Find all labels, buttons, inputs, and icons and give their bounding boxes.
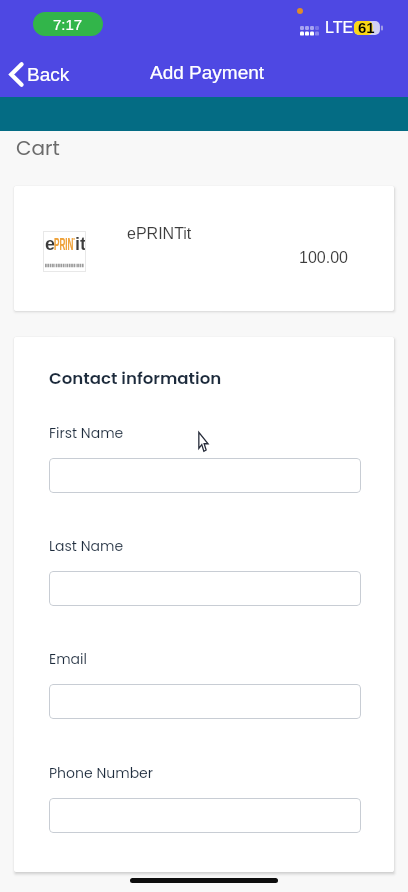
staticText: Cart [16,134,60,162]
button[interactable]: Phone Number [49,798,361,833]
button[interactable]: Email [49,684,361,719]
staticText: First Name [49,423,124,443]
staticText: ePRINTit [127,225,192,243]
staticText: Add Payment [150,62,265,83]
staticText: PRINT [54,235,75,254]
staticText: Phone Number [49,763,153,783]
staticText: e [45,234,56,254]
staticText: Last Name [49,536,124,556]
button[interactable]: Back [4,57,78,91]
staticText: 61 [358,19,375,36]
button[interactable]: First Name [49,458,361,493]
staticText: LTE [325,19,354,37]
staticText: Email [49,649,87,669]
staticText: it [75,234,86,254]
button[interactable]: e [14,186,394,311]
staticText: Contact information [49,367,222,390]
button[interactable]: Return to call [33,12,103,36]
button[interactable]: Last Name [49,571,361,606]
staticText: 100.00 [299,249,348,267]
staticText: 7:17 [53,16,83,33]
staticText: Back [27,64,70,85]
